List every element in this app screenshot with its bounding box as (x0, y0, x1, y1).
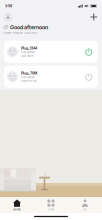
staticText: Home (13, 208, 21, 211)
staticText: Plug_f344 (21, 46, 37, 50)
button[interactable]: Add device (90, 13, 98, 21)
staticText: Bed1 bedroom (21, 76, 35, 79)
button[interactable]: Smart (34, 197, 68, 213)
staticText: Smart (47, 208, 54, 211)
button[interactable]: Home (0, 197, 34, 213)
staticText: Bed1 bedroom (21, 51, 35, 54)
button[interactable]: Plug_799f (4, 66, 98, 88)
staticText: Good afternoon (10, 24, 48, 30)
staticText: Local device (21, 55, 33, 57)
button[interactable]: Me (68, 197, 102, 213)
button[interactable]: Plug_f344 (4, 41, 98, 63)
staticText: Current timezone: Asia/Seoul (3, 32, 37, 35)
staticText: Plug_799f (21, 71, 37, 75)
button[interactable]: Profile (4, 13, 12, 21)
staticText: Device offline (21, 80, 36, 82)
staticText: 3:58 (5, 4, 12, 8)
staticText: Me (83, 208, 87, 211)
